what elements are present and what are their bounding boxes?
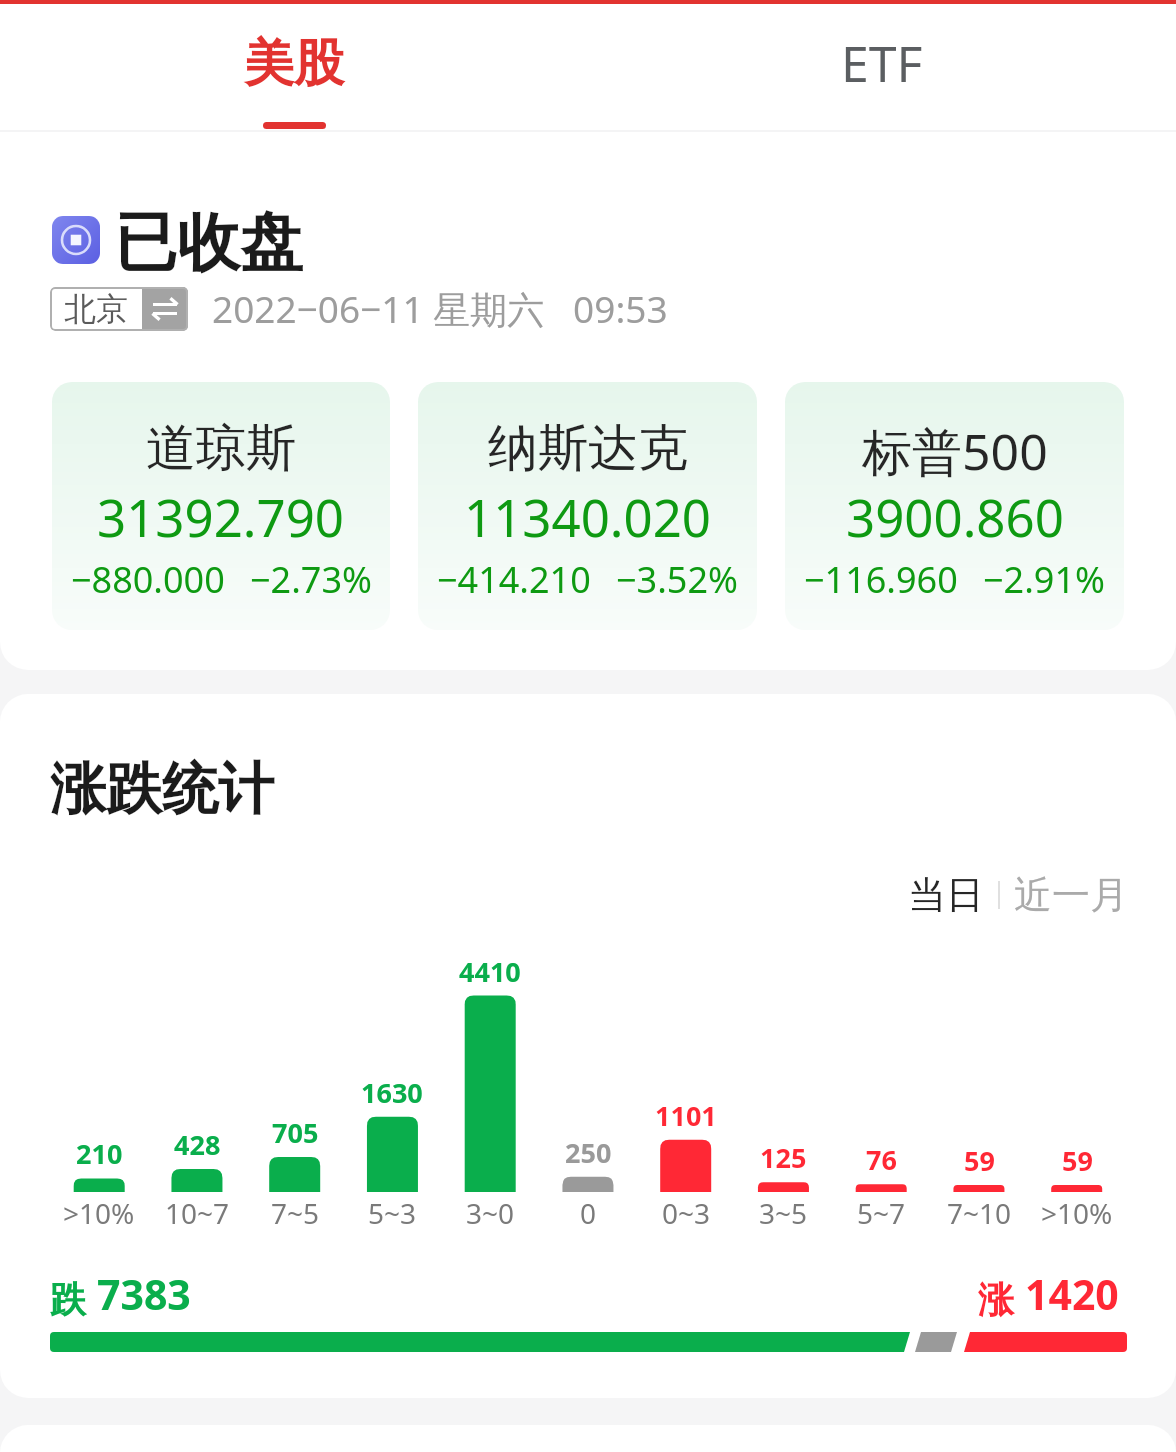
staticText: 76 (866, 1141, 897, 1178)
staticText: 纳斯达克 (488, 417, 688, 480)
button[interactable]: 近一月 (1014, 865, 1128, 925)
staticText: 11340.020 (464, 482, 712, 551)
staticText: −3.52% (616, 555, 738, 604)
staticText: 0~3 (662, 1194, 711, 1232)
button[interactable] (50, 1332, 1127, 1352)
button[interactable]: ETF (588, 4, 1176, 130)
staticText: >10% (1041, 1194, 1113, 1232)
staticText: 3900.860 (846, 482, 1064, 551)
staticText: −2.73% (250, 555, 372, 604)
staticText: 标普500 (862, 417, 1048, 485)
staticText: 涨跌统计 (50, 754, 274, 825)
staticText: 近一月 (1014, 871, 1128, 919)
button[interactable]: 道琼斯 (52, 382, 390, 630)
staticText: −880.000 (71, 555, 225, 604)
staticText: 跌 (50, 1277, 86, 1322)
staticText: 250 (565, 1134, 612, 1171)
staticText: 125 (760, 1139, 807, 1176)
staticText: 3~5 (759, 1194, 808, 1232)
staticText: 4410 (459, 953, 521, 990)
staticText: 已收盘 (114, 203, 303, 282)
staticText: 道琼斯 (146, 417, 296, 480)
staticText: 7~5 (271, 1194, 320, 1232)
button[interactable]: 已收盘 (52, 200, 303, 279)
staticText: 1101 (655, 1097, 717, 1134)
staticText: 3~0 (466, 1194, 515, 1232)
staticText: 5~3 (368, 1194, 417, 1232)
staticText: >10% (63, 1194, 135, 1232)
staticText: 北京 (64, 289, 128, 329)
staticText: ETF (841, 29, 923, 97)
button[interactable]: 北京 (50, 287, 188, 331)
staticText: 涨 (978, 1277, 1014, 1322)
staticText: 当日 (908, 871, 984, 919)
staticText: 31392.790 (97, 482, 345, 551)
staticText: −2.91% (983, 555, 1105, 604)
staticText: 美股 (244, 32, 344, 95)
button[interactable]: 美股 (0, 4, 588, 130)
staticText: 1630 (361, 1074, 423, 1111)
staticText: 59 (1062, 1142, 1093, 1179)
staticText: −414.210 (437, 555, 591, 604)
staticText: 210 (76, 1135, 123, 1172)
button[interactable]: 纳斯达克 (418, 382, 757, 630)
staticText: 10~7 (165, 1194, 230, 1232)
staticText: 7383 (97, 1266, 191, 1322)
button[interactable]: 标普500 (785, 382, 1124, 630)
staticText: 7~10 (947, 1194, 1012, 1232)
staticText: 59 (964, 1142, 995, 1179)
staticText: 1420 (1025, 1266, 1119, 1322)
staticText: 0 (580, 1194, 597, 1232)
other: 切换时区 (142, 287, 188, 331)
button[interactable]: 当日 (908, 865, 984, 925)
staticText: 2022−06−11 星期六 09:53 (212, 283, 668, 334)
staticText: −116.960 (804, 555, 958, 604)
staticText: 5~7 (857, 1194, 906, 1232)
staticText: 705 (272, 1114, 319, 1151)
staticText: 428 (174, 1126, 221, 1163)
